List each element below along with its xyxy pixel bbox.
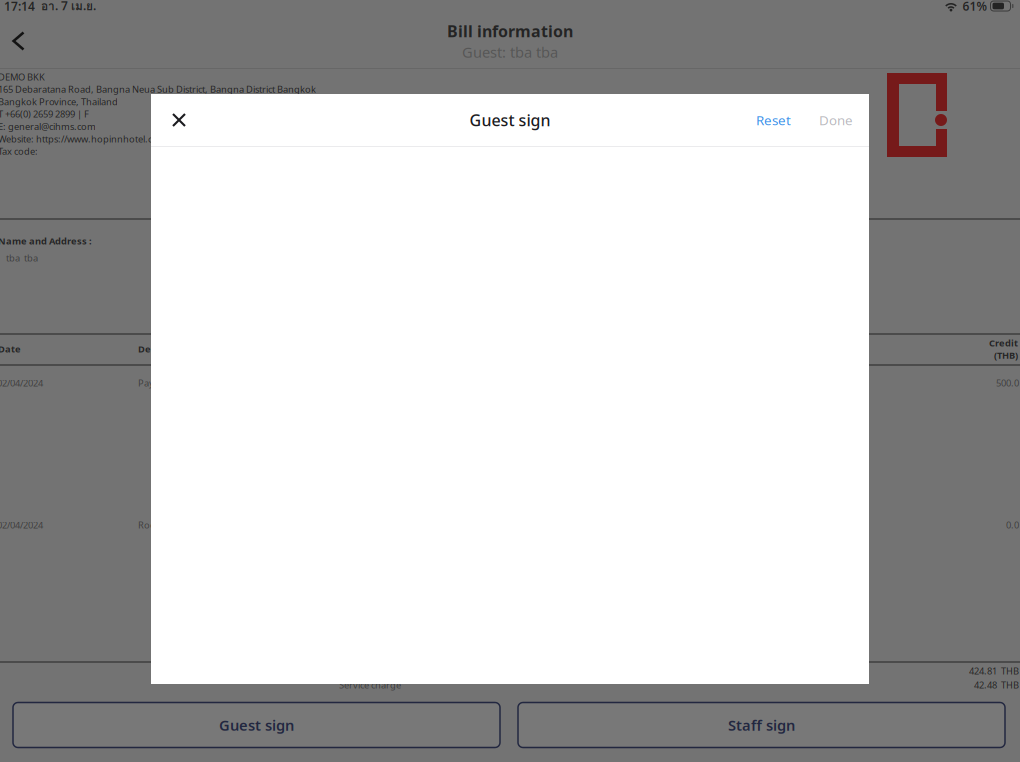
staticText: Reset [756,111,791,129]
button[interactable]: Staff sign [518,702,1005,747]
staticText: E: general@cihms.com [0,120,96,133]
staticText: Guest sign [469,109,550,131]
staticText: 61% [962,0,987,14]
staticText: Bangkok Province, Thailand [0,95,118,108]
staticText: Credit [989,337,1018,349]
staticText: 02/04/2024 [0,519,43,531]
staticText: 0.0 [1006,519,1019,531]
staticText: Guest sign [219,715,294,735]
staticText: Payment - Cash [138,377,205,389]
button[interactable]: Close [157,94,201,146]
staticText: tba tba [6,252,38,264]
staticText: T +66(0) 2659 2899 | F [0,108,89,120]
staticText: 500.0 [996,377,1019,389]
staticText: Name and Address : [0,235,92,247]
staticText: Staff sign [728,715,795,735]
staticText: 165 Debaratana Road, Bangna Neua Sub Dis… [0,83,316,95]
button[interactable]: Guest sign [13,702,500,747]
staticText: อา. 7 เม.ย. [41,0,96,15]
staticText: Tax code: [0,145,38,157]
button[interactable]: Reset [742,94,805,146]
staticText: Done [819,111,853,129]
staticText: Guest: tba tba [462,42,558,62]
staticText: Website: https://www.hopinnhotel.com [0,133,167,145]
staticText: Room charge [138,519,197,531]
staticText: Service charge [339,679,401,691]
staticText: 17:14 [4,0,35,14]
staticText: 02/04/2024 [0,377,43,389]
staticText: DEMO BKK [0,71,45,83]
button[interactable]: Done [805,94,867,146]
staticText: Bill information [447,20,573,42]
button[interactable]: Back [0,20,39,62]
staticText: 424.81 THB [969,665,1019,677]
staticText: Date [0,343,21,355]
staticText: 42.48 THB [974,679,1019,691]
staticText: (THB) [994,349,1018,361]
staticText: Description [138,343,193,355]
